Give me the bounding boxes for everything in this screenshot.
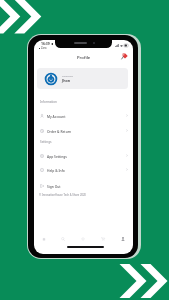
button[interactable]: Help & Info (34, 164, 133, 175)
button[interactable]: Profile (113, 234, 133, 244)
staticText: Profile (77, 55, 91, 61)
button[interactable]: Welcome (37, 68, 128, 89)
staticText: Welcome (62, 74, 73, 77)
button[interactable]: My Account (34, 110, 133, 121)
staticText: Help & Info (47, 168, 65, 172)
button[interactable]: App Settings (34, 150, 133, 161)
button[interactable]: Order & Return (34, 125, 133, 136)
staticText: 16:39 (41, 41, 50, 46)
button[interactable]: Offers (120, 51, 129, 60)
staticText: Order & Return (47, 129, 72, 133)
staticText: Sign Out (47, 184, 61, 188)
staticText: © InnovationHouse Tech & Share 2020 (39, 193, 86, 197)
staticText: Zara (41, 46, 47, 50)
staticText: Settings (40, 140, 52, 144)
staticText: My Account (47, 114, 66, 118)
button[interactable]: Home (34, 234, 53, 244)
staticText: Jhon (62, 78, 71, 83)
staticText: Information (40, 100, 57, 104)
button[interactable]: Sign Out (34, 180, 133, 191)
staticText: App Settings (47, 154, 67, 158)
